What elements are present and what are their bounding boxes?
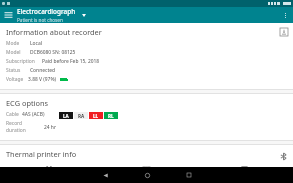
staticText: Patient is not chosen — [17, 17, 63, 23]
button[interactable]: Recent apps — [180, 167, 198, 183]
button[interactable]: Home — [138, 167, 156, 183]
staticText: Voltage — [6, 76, 24, 83]
staticText: Information about recorder — [6, 27, 102, 37]
staticText: Status — [6, 67, 21, 74]
staticText: Electrocardiograph — [17, 7, 76, 16]
button[interactable]: Choose patient — [76, 7, 92, 23]
staticText: DCB6080 SN: 08125 — [30, 49, 76, 56]
button[interactable]: Electrocardiograph — [17, 7, 76, 23]
staticText: ECG options — [6, 98, 49, 108]
staticText: 4AS (ACB) — [22, 111, 45, 118]
button[interactable]: More options — [277, 7, 293, 23]
staticText: RL — [108, 113, 114, 119]
staticText: LA — [63, 113, 69, 119]
staticText: RA — [78, 113, 85, 119]
staticText: LL — [93, 113, 99, 119]
staticText: Subscription — [6, 58, 35, 65]
staticText: 24 hr — [44, 124, 57, 131]
button[interactable]: Save recorder info — [279, 27, 288, 36]
button[interactable]: Open navigation drawer — [0, 7, 17, 23]
staticText: 3.88 V (97%) — [28, 76, 57, 83]
staticText: Mode — [6, 40, 20, 47]
button[interactable]: Bluetooth settings — [279, 152, 288, 161]
staticText: Record duration — [6, 120, 42, 134]
staticText: Paid before Feb 15, 2018 — [42, 58, 100, 65]
staticText: Thermal printer info — [6, 149, 77, 159]
staticText: Cable — [6, 111, 19, 118]
button[interactable]: Back — [96, 167, 114, 183]
staticText: Connected — [30, 67, 56, 74]
staticText: Local — [30, 40, 43, 47]
staticText: Model — [6, 49, 21, 56]
